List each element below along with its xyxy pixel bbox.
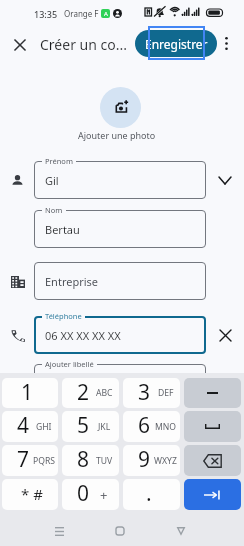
- staticText: Ajouter une photo: [78, 129, 156, 141]
- staticText: Ajouter libellé: [45, 359, 94, 369]
- staticText: +: [100, 486, 108, 504]
- button[interactable]: [34, 262, 206, 300]
- button[interactable]: Expand: [214, 169, 236, 191]
- button[interactable]: Backspace: [184, 445, 241, 476]
- staticText: WXYZ: [154, 455, 177, 467]
- staticText: 0: [77, 479, 90, 508]
- staticText: 6: [138, 411, 151, 440]
- staticText: 1: [21, 378, 34, 407]
- staticText: 7: [17, 445, 30, 474]
- button[interactable]: 6: [123, 411, 180, 442]
- staticText: 3: [138, 378, 151, 407]
- button[interactable]: Dash: [184, 378, 241, 408]
- staticText: Entreprise: [45, 274, 99, 289]
- button[interactable]: 0: [62, 479, 119, 510]
- staticText: PQRS: [33, 455, 55, 467]
- staticText: .: [146, 479, 152, 508]
- button[interactable]: * #: [2, 479, 58, 510]
- button[interactable]: Name: [7, 170, 28, 191]
- staticText: ABC: [96, 387, 113, 399]
- staticText: GHI: [36, 421, 52, 433]
- staticText: Créer un co...: [40, 35, 127, 54]
- staticText: 4: [17, 411, 30, 440]
- button[interactable]: 4: [2, 411, 58, 442]
- staticText: Enregistrer: [145, 36, 208, 52]
- button[interactable]: 2: [62, 378, 119, 408]
- button[interactable]: Clear: [214, 324, 236, 346]
- staticText: Nom: [45, 205, 63, 215]
- button[interactable]: Home: [109, 520, 131, 542]
- button[interactable]: Close: [7, 32, 32, 57]
- button[interactable]: [34, 316, 206, 354]
- staticText: 9: [138, 445, 151, 474]
- staticText: 8: [77, 445, 90, 474]
- button[interactable]: 9: [123, 445, 180, 476]
- staticText: Bertau: [45, 222, 80, 237]
- button[interactable]: [34, 364, 206, 402]
- button[interactable]: Company: [7, 271, 28, 292]
- staticText: Orange F: [64, 8, 99, 19]
- button[interactable]: Back: [170, 520, 192, 542]
- button[interactable]: 1: [2, 378, 58, 408]
- button[interactable]: More options: [214, 31, 239, 56]
- staticText: Prénom: [45, 156, 73, 166]
- button[interactable]: Space: [184, 411, 241, 442]
- button[interactable]: [34, 210, 206, 248]
- button[interactable]: Phone: [7, 325, 28, 346]
- staticText: * #: [21, 484, 43, 504]
- staticText: TUV: [96, 455, 113, 467]
- button[interactable]: Enter: [184, 479, 241, 510]
- staticText: JKL: [98, 421, 111, 433]
- button[interactable]: [34, 161, 206, 199]
- staticText: 13:35: [34, 8, 58, 20]
- staticText: Gil: [45, 173, 59, 188]
- staticText: 06 XX XX XX XX: [45, 328, 121, 343]
- staticText: MNO: [155, 421, 177, 433]
- button[interactable]: 3: [123, 378, 180, 408]
- staticText: Téléphone: [45, 311, 82, 321]
- button[interactable]: Add photo: [100, 87, 141, 128]
- button[interactable]: Enregistrer: [135, 30, 217, 57]
- button[interactable]: 7: [2, 445, 58, 476]
- button[interactable]: 8: [62, 445, 119, 476]
- staticText: A: [104, 10, 108, 18]
- button[interactable]: .: [123, 479, 180, 510]
- staticText: 2: [77, 378, 90, 407]
- staticText: 5: [77, 411, 90, 440]
- staticText: DEF: [158, 387, 174, 399]
- button[interactable]: Recents: [48, 520, 70, 542]
- button[interactable]: 5: [62, 411, 119, 442]
